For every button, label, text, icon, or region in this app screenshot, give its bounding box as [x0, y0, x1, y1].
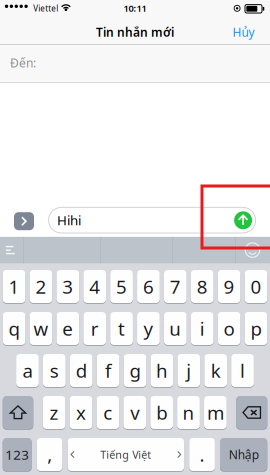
- button[interactable]: l: [231, 354, 254, 387]
- staticText: 8: [197, 274, 208, 299]
- button[interactable]: x: [70, 396, 92, 429]
- button[interactable]: w: [30, 312, 52, 345]
- staticText: Viettel: [33, 3, 58, 14]
- staticText: f: [105, 358, 111, 383]
- staticText: v: [130, 400, 139, 425]
- button[interactable]: r: [83, 312, 106, 345]
- staticText: i: [200, 316, 205, 341]
- staticText: 9: [224, 274, 235, 299]
- staticText: b: [156, 400, 167, 425]
- staticText: Nhập: [229, 446, 259, 462]
- button[interactable]: Hủy: [221, 19, 270, 45]
- button[interactable]: Apps: [14, 212, 34, 230]
- staticText: p: [250, 316, 261, 341]
- staticText: 5: [116, 274, 127, 299]
- button[interactable]: k: [204, 354, 227, 387]
- staticText: m: [207, 400, 224, 425]
- staticText: 4: [89, 274, 100, 299]
- button[interactable]: g: [124, 354, 146, 387]
- button[interactable]: i: [191, 312, 214, 345]
- button[interactable]: Emoji: [235, 237, 270, 263]
- button[interactable]: v: [123, 396, 146, 429]
- button[interactable]: y: [137, 312, 160, 345]
- staticText: s: [50, 358, 59, 383]
- staticText: z: [50, 400, 59, 425]
- button[interactable]: 7: [164, 270, 187, 303]
- button[interactable]: j: [177, 354, 200, 387]
- button[interactable]: Tiếng Việt: [68, 438, 184, 471]
- button[interactable]: Delete: [236, 396, 267, 429]
- staticText: l: [240, 358, 245, 383]
- staticText: d: [76, 358, 87, 383]
- staticText: ,: [47, 442, 52, 467]
- button[interactable]: Keyboard settings: [0, 237, 23, 263]
- button[interactable]: n: [177, 396, 200, 429]
- staticText: y: [143, 316, 153, 341]
- button[interactable]: 9: [218, 270, 240, 303]
- staticText: 10:11: [123, 2, 146, 14]
- staticText: Đến:: [10, 55, 36, 71]
- staticText: 123: [5, 446, 29, 463]
- staticText: e: [62, 316, 73, 341]
- staticText: q: [8, 316, 19, 341]
- button[interactable]: 2: [30, 270, 52, 303]
- button[interactable]: Shift: [3, 396, 33, 429]
- button[interactable]: .: [189, 438, 215, 471]
- button[interactable]: 1: [3, 270, 25, 303]
- button[interactable]: 3: [56, 270, 79, 303]
- staticText: g: [129, 358, 140, 383]
- staticText: h: [156, 358, 168, 383]
- staticText: o: [224, 316, 235, 341]
- button[interactable]: 0: [245, 270, 267, 303]
- staticText: c: [103, 400, 112, 425]
- staticText: 3: [62, 274, 73, 299]
- button[interactable]: u: [164, 312, 187, 345]
- button[interactable]: 6: [137, 270, 160, 303]
- button[interactable]: ,: [37, 438, 62, 471]
- staticText: w: [33, 316, 48, 341]
- staticText: Hihi: [57, 211, 81, 229]
- staticText: Hủy: [233, 24, 255, 40]
- staticText: 6: [143, 274, 154, 299]
- button[interactable]: d: [70, 354, 93, 387]
- staticText: 1: [8, 274, 19, 299]
- button[interactable]: 123: [3, 438, 32, 471]
- button[interactable]: a: [16, 354, 39, 387]
- button[interactable]: e: [56, 312, 79, 345]
- button[interactable]: Send: [234, 211, 252, 229]
- button[interactable]: h: [150, 354, 173, 387]
- staticText: x: [76, 400, 86, 425]
- button[interactable]: m: [204, 396, 227, 429]
- button[interactable]: 5: [110, 270, 133, 303]
- button[interactable]: 8: [191, 270, 214, 303]
- button[interactable]: s: [43, 354, 66, 387]
- staticText: 7: [170, 274, 181, 299]
- button[interactable]: 4: [83, 270, 106, 303]
- staticText: a: [22, 358, 32, 383]
- staticText: .: [200, 442, 205, 467]
- staticText: 2: [35, 274, 46, 299]
- staticText: k: [211, 358, 221, 383]
- staticText: n: [182, 400, 194, 425]
- button[interactable]: z: [43, 396, 65, 429]
- staticText: t: [118, 316, 125, 341]
- button[interactable]: t: [110, 312, 133, 345]
- staticText: j: [186, 358, 191, 383]
- staticText: u: [169, 316, 181, 341]
- button[interactable]: b: [150, 396, 173, 429]
- staticText: Tin nhắn mới: [96, 24, 174, 40]
- button[interactable]: p: [245, 312, 267, 345]
- staticText: 0: [250, 274, 261, 299]
- button[interactable]: q: [3, 312, 25, 345]
- button[interactable]: f: [97, 354, 119, 387]
- staticText: r: [91, 316, 99, 341]
- button[interactable]: Nhập: [220, 438, 267, 471]
- button[interactable]: o: [218, 312, 240, 345]
- button[interactable]: c: [96, 396, 119, 429]
- staticText: Tiếng Việt: [100, 447, 151, 462]
